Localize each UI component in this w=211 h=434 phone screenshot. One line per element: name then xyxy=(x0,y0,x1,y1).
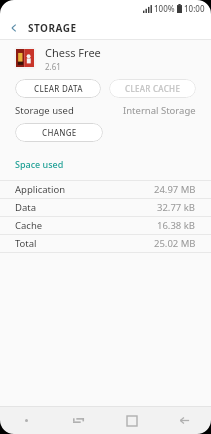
staticText: 16.38 kB xyxy=(157,219,196,232)
button[interactable]: CLEAR CACHE xyxy=(109,79,196,98)
staticText: 32.77 kB xyxy=(157,201,196,214)
button[interactable]: Assistant xyxy=(0,407,52,434)
staticText: CLEAR DATA xyxy=(34,83,83,94)
staticText: Space used xyxy=(15,158,64,170)
staticText: STORAGE xyxy=(28,21,77,35)
staticText: Total xyxy=(15,237,37,250)
staticText: Application xyxy=(15,183,66,196)
staticText: 10:00 xyxy=(184,3,205,14)
staticText: Data xyxy=(15,201,37,214)
staticText: 24.97 MB xyxy=(154,183,196,196)
staticText: 25.02 MB xyxy=(154,237,196,250)
staticText: 2.61 xyxy=(45,61,61,72)
button[interactable]: CHANGE xyxy=(15,123,103,142)
staticText: Chess Free xyxy=(45,45,101,60)
staticText: Storage used xyxy=(15,104,74,117)
button[interactable]: CLEAR DATA xyxy=(15,79,101,98)
staticText: Internal Storage xyxy=(123,104,196,117)
staticText: CLEAR CACHE xyxy=(125,83,181,94)
button[interactable]: Back xyxy=(158,407,211,434)
button[interactable]: Recent apps xyxy=(52,407,105,434)
staticText: Cache xyxy=(15,219,43,232)
button[interactable]: Back xyxy=(0,17,28,39)
button[interactable]: Home xyxy=(105,407,158,434)
staticText: CHANGE xyxy=(42,127,77,138)
staticText: 100% xyxy=(154,3,175,14)
